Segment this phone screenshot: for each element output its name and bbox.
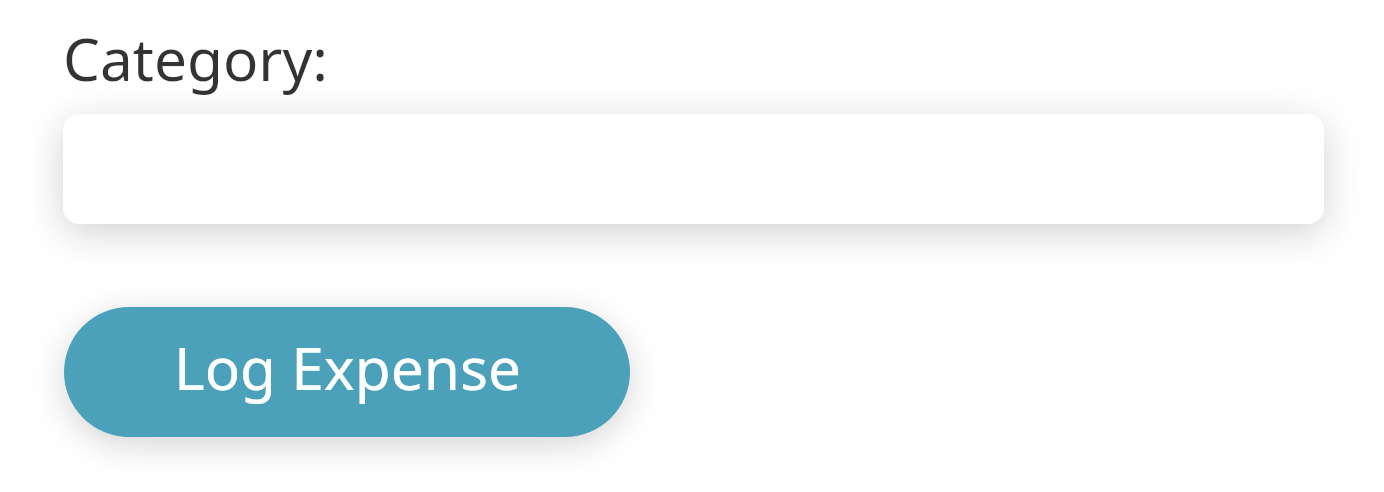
button[interactable]: Log Expense: [64, 307, 630, 437]
staticText: Log Expense: [174, 327, 521, 407]
staticText: Category:: [63, 18, 328, 98]
